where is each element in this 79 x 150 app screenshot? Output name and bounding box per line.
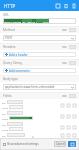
staticText: raw xyxy=(62,94,67,98)
staticText: /v1 xyxy=(32,20,36,23)
button[interactable]: Move field xyxy=(59,113,65,119)
staticText: example xyxy=(13,20,22,23)
button[interactable]: https xyxy=(3,18,76,24)
staticText: /api xyxy=(27,20,32,23)
button[interactable]: key xyxy=(2,100,77,109)
staticText: name xyxy=(7,101,15,104)
staticText: =1 xyxy=(46,20,49,23)
staticText: URL xyxy=(3,13,9,17)
button[interactable]: application/x-www-form-urlencoded xyxy=(3,84,76,90)
staticText: Fields xyxy=(3,94,12,98)
staticText: key xyxy=(2,101,6,104)
staticText: key xyxy=(2,112,6,115)
button[interactable]: Toggle Method view xyxy=(69,28,76,32)
button[interactable]: HTTP xyxy=(3,3,17,9)
staticText: Cancel xyxy=(56,142,65,146)
staticText: value xyxy=(2,117,8,120)
staticText: value xyxy=(2,128,8,131)
button[interactable]: Toggle Query String view xyxy=(69,61,76,65)
staticText: payload xyxy=(7,134,18,137)
staticText: raw xyxy=(62,28,67,32)
button[interactable]: key xyxy=(2,111,77,120)
button[interactable]: POST xyxy=(3,35,76,41)
button[interactable]: Save xyxy=(54,2,62,10)
button[interactable]: Delete xyxy=(62,2,70,10)
button[interactable]: Save xyxy=(68,141,76,147)
staticText: raw xyxy=(62,45,67,49)
button[interactable]: Edit field xyxy=(65,113,71,119)
staticText: key xyxy=(2,134,6,137)
button[interactable]: Delete field xyxy=(71,133,77,137)
button[interactable]: Add a header xyxy=(3,52,76,57)
button[interactable]: Toggle Headers view xyxy=(69,45,76,49)
staticText: ?q xyxy=(43,20,46,23)
staticText: value xyxy=(2,106,8,109)
staticText: page xyxy=(7,123,14,126)
button[interactable]: Edit field xyxy=(65,102,71,108)
staticText: Add parameter xyxy=(9,69,31,73)
staticText: :// xyxy=(10,20,13,23)
staticText: Add a header xyxy=(9,53,28,57)
button[interactable]: Toggle Fields view xyxy=(69,94,76,98)
button[interactable]: Edit field xyxy=(65,124,71,130)
staticText: raw xyxy=(62,61,67,65)
staticText: Headers xyxy=(3,45,16,49)
button[interactable]: More options xyxy=(70,2,78,10)
button[interactable]: raw xyxy=(61,45,68,49)
staticText: key xyxy=(2,123,6,126)
button[interactable]: raw xyxy=(61,94,68,98)
staticText: POST xyxy=(5,36,13,40)
staticText: Body type xyxy=(3,77,18,81)
staticText: https xyxy=(4,20,10,23)
staticText: John Doe xyxy=(9,106,21,109)
staticText: Method xyxy=(3,28,15,32)
staticText: application/x-www-form-urlencoded xyxy=(5,85,55,89)
staticText: HTTP xyxy=(4,3,16,9)
staticText: 2 xyxy=(9,128,12,131)
button[interactable]: Show advanced settings xyxy=(3,142,39,146)
button[interactable]: raw xyxy=(61,61,68,65)
staticText: term xyxy=(17,117,23,120)
staticText: search xyxy=(9,117,17,120)
button[interactable]: Edit field xyxy=(65,133,71,137)
button[interactable]: Delete field xyxy=(71,102,77,108)
button[interactable]: Move field xyxy=(59,124,65,130)
staticText: page xyxy=(23,117,29,120)
staticText: .com xyxy=(22,20,27,23)
staticText: Show advanced settings xyxy=(7,142,39,146)
button[interactable]: Move field xyxy=(59,133,65,137)
button[interactable]: key xyxy=(2,122,77,131)
button[interactable]: Delete field xyxy=(71,113,77,119)
staticText: /items xyxy=(36,20,43,23)
button[interactable]: Move field xyxy=(59,102,65,108)
button[interactable]: Delete field xyxy=(71,124,77,130)
button[interactable]: raw xyxy=(61,28,68,32)
staticText: x xyxy=(30,117,32,120)
staticText: query xyxy=(7,112,15,115)
button[interactable]: key xyxy=(2,133,77,137)
button[interactable]: Cancel xyxy=(54,141,66,147)
button[interactable]: Add parameter xyxy=(3,68,76,73)
staticText: Query String xyxy=(3,61,22,65)
